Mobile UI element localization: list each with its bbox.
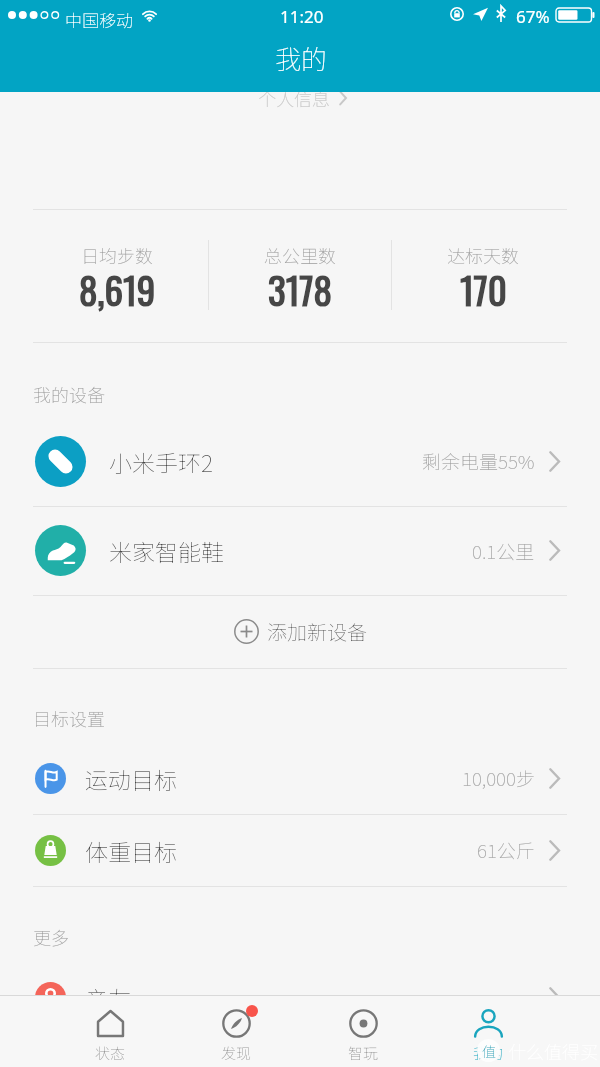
staticText: 170	[460, 262, 507, 317]
button[interactable]: 运动目标	[0, 742, 600, 814]
staticText: 11:20	[280, 5, 324, 28]
staticText: 我的	[275, 39, 328, 77]
staticText: 67%	[516, 5, 550, 28]
button[interactable]: 个人信息	[0, 92, 600, 132]
button[interactable]: 添加新设备	[0, 595, 600, 668]
staticText: 0.1公里	[472, 537, 535, 565]
staticText: 智玩	[348, 1042, 379, 1064]
staticText: 剩余电量55%	[422, 447, 535, 475]
staticText: 亲友	[85, 981, 131, 1014]
staticText: 发现	[221, 1042, 252, 1064]
staticText: 8,619	[79, 262, 156, 317]
staticText: 10,000步	[462, 764, 535, 792]
button[interactable]: 小米手环2	[0, 416, 600, 506]
staticText: 我的	[473, 1042, 504, 1064]
staticText: 总公里数	[264, 242, 336, 268]
staticText: 更多	[33, 924, 69, 950]
staticText: 中国移动	[65, 7, 133, 32]
button[interactable]: 体重目标	[0, 814, 600, 886]
button[interactable]: 智玩	[318, 995, 408, 1067]
button[interactable]: 我的	[443, 995, 533, 1067]
button[interactable]: 米家智能鞋	[0, 506, 600, 595]
staticText: 我的设备	[33, 381, 105, 407]
staticText: 米家智能鞋	[109, 534, 224, 567]
button[interactable]: 亲友	[0, 961, 600, 1033]
staticText: 值	[482, 1041, 496, 1061]
staticText: 3178	[268, 262, 332, 317]
staticText: 达标天数	[447, 242, 519, 268]
staticText: 添加新设备	[267, 617, 367, 646]
staticText: 体重目标	[85, 834, 177, 867]
staticText: 61公斤	[477, 836, 535, 864]
staticText: 小米手环2	[109, 445, 213, 478]
staticText: 目标设置	[33, 705, 105, 731]
staticText: 日均步数	[81, 242, 153, 268]
staticText: 运动目标	[85, 762, 177, 795]
button[interactable]: 状态	[65, 995, 155, 1067]
staticText: 个人信息	[258, 85, 330, 111]
button[interactable]: 发现	[191, 995, 281, 1067]
staticText: 状态	[95, 1042, 126, 1064]
